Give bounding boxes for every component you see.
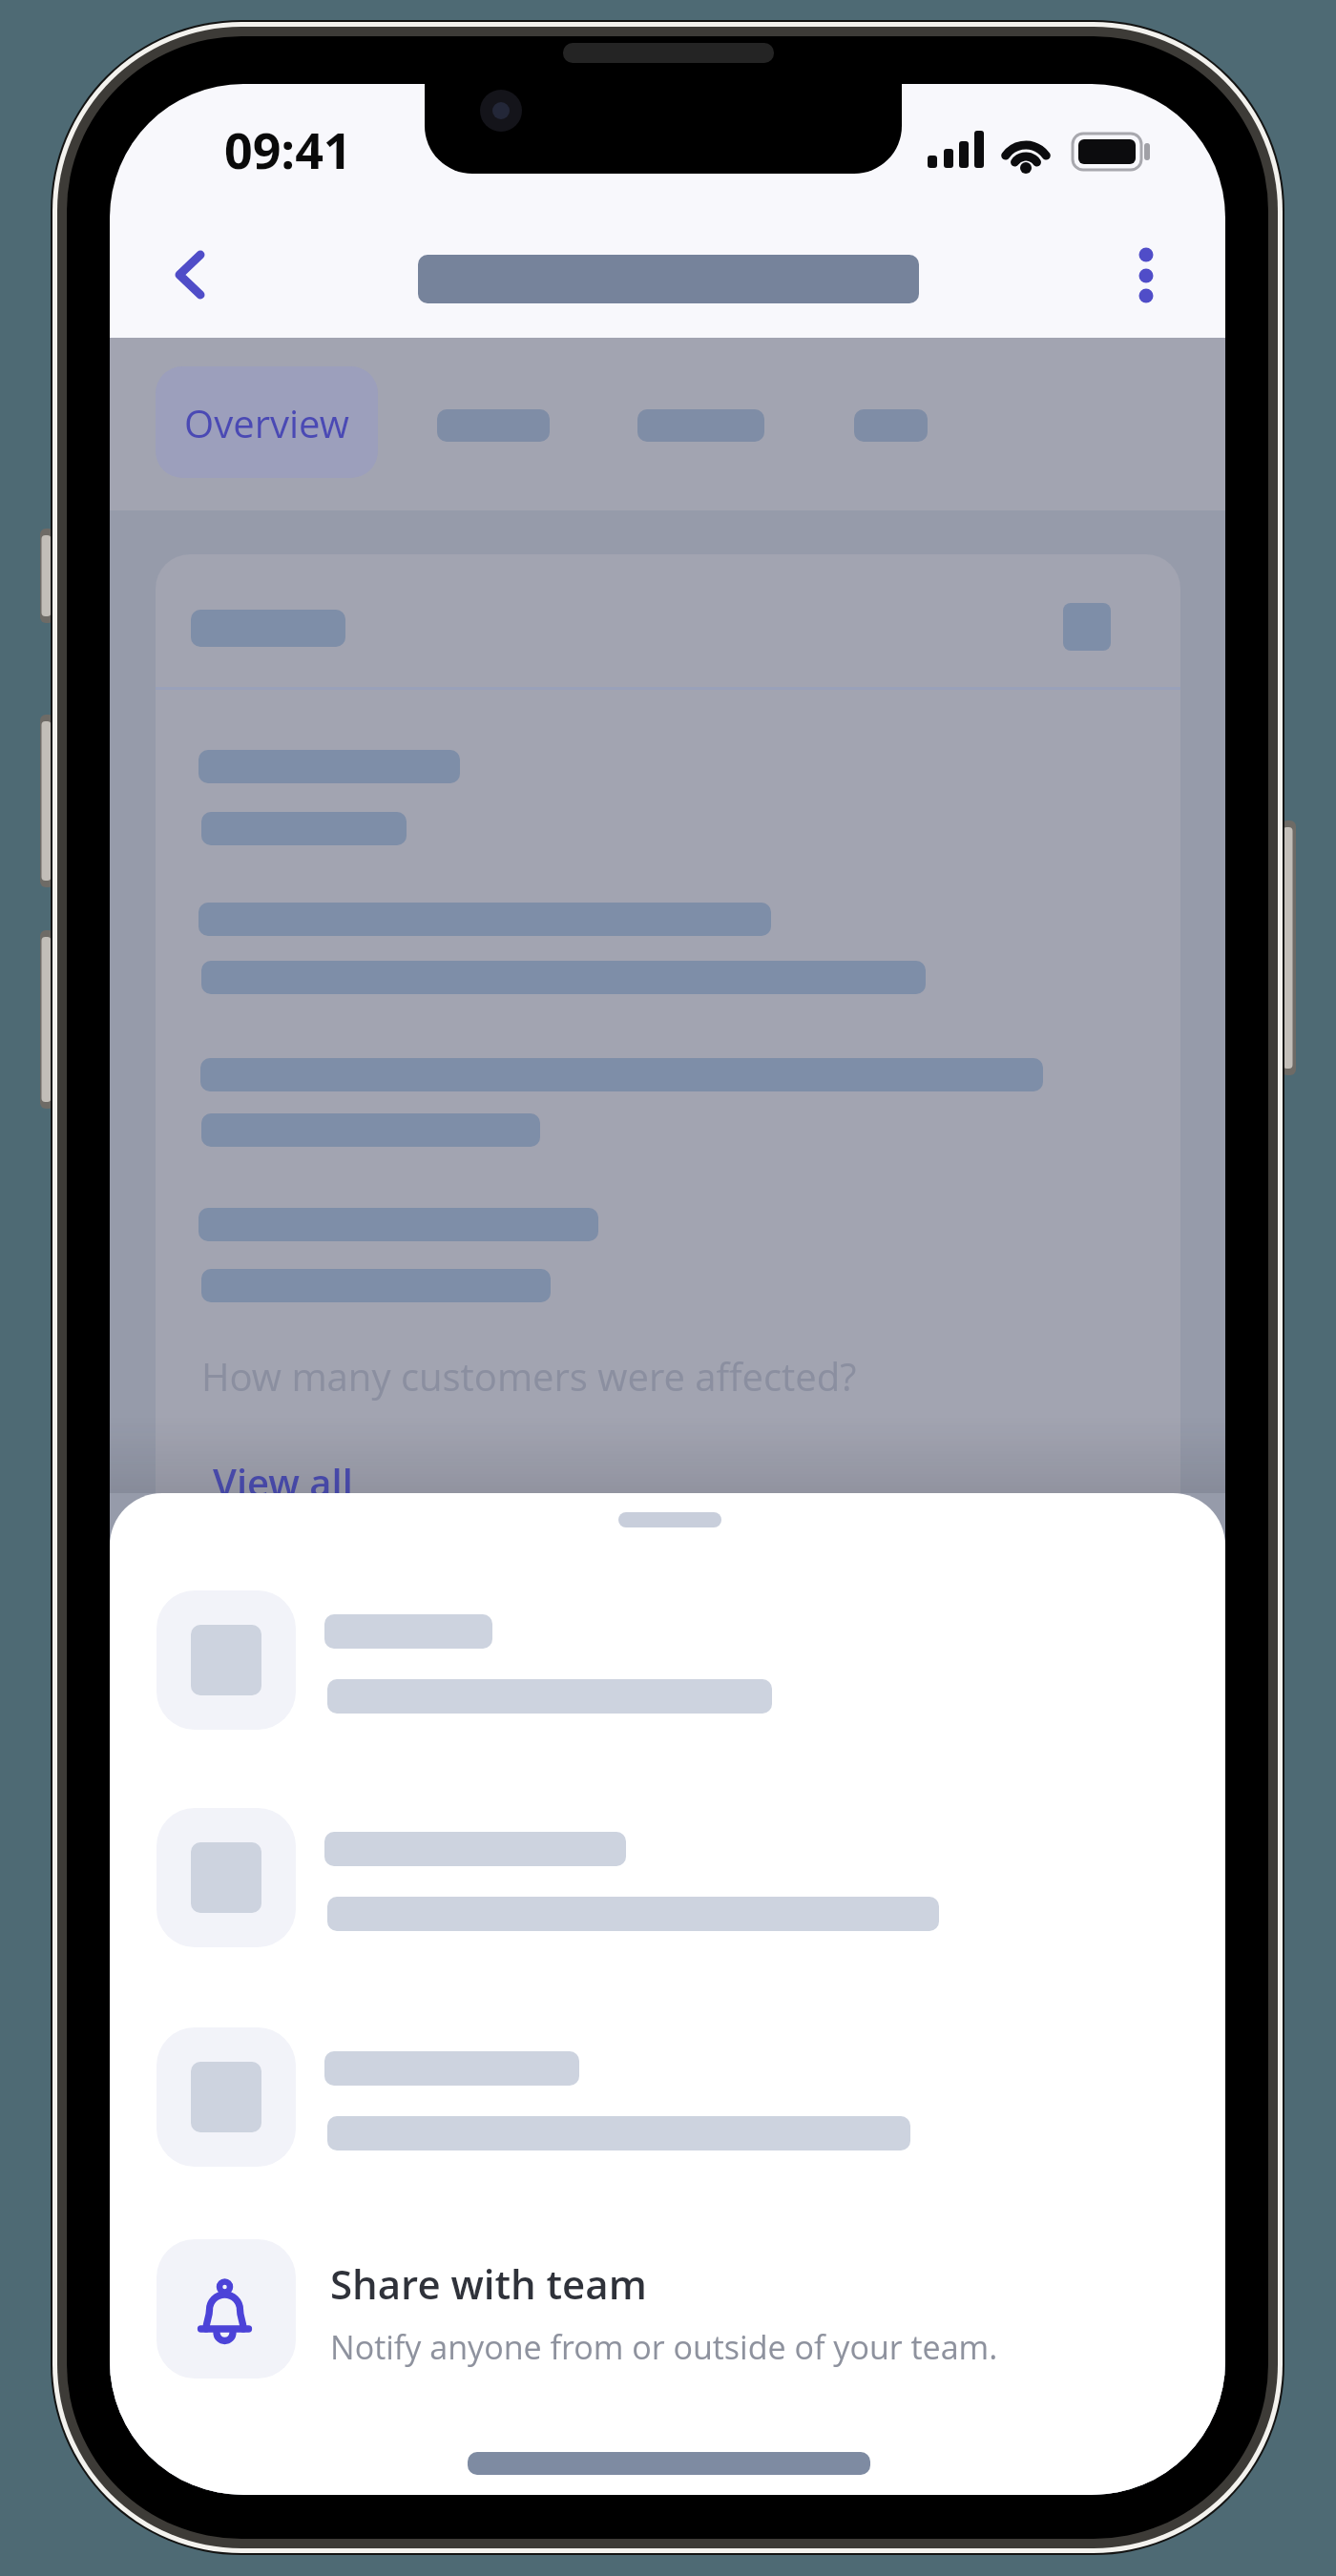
button[interactable] [157, 1590, 296, 1730]
staticText: Share with team [330, 2256, 647, 2311]
staticText: Overview [184, 397, 349, 448]
button[interactable] [157, 2239, 1132, 2379]
button[interactable] [157, 2027, 1132, 2167]
staticText: Notify anyone from or outside of your te… [330, 2325, 998, 2369]
button[interactable] [157, 1808, 1132, 1947]
staticText: 09:41 [224, 115, 352, 183]
button[interactable] [148, 235, 234, 317]
button[interactable] [157, 1590, 1132, 1730]
staticText: How many customers were affected? [201, 1350, 857, 1402]
button[interactable]: View all [213, 1456, 353, 1507]
button[interactable] [1103, 235, 1189, 317]
button[interactable] [157, 1808, 296, 1947]
button[interactable] [157, 2027, 296, 2167]
button[interactable] [157, 2239, 296, 2379]
button[interactable]: Overview [156, 366, 378, 478]
